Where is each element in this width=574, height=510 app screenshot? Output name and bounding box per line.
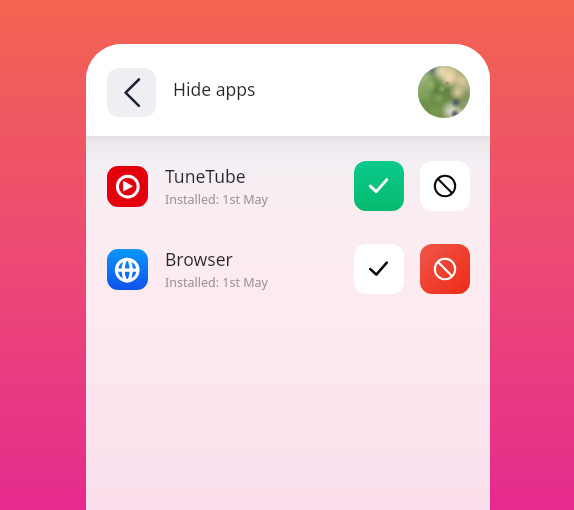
staticText: Browser bbox=[165, 247, 233, 271]
staticText: Installed: 1st May bbox=[165, 191, 268, 208]
button[interactable]: Allow bbox=[354, 161, 404, 211]
button[interactable]: Profile bbox=[418, 66, 470, 118]
staticText: Installed: 1st May bbox=[165, 274, 268, 291]
button[interactable]: Back bbox=[107, 68, 156, 117]
button[interactable]: Block bbox=[420, 161, 470, 211]
button[interactable]: Allow bbox=[354, 244, 404, 294]
staticText: TuneTube bbox=[165, 164, 246, 188]
staticText: Hide apps bbox=[173, 77, 256, 101]
button[interactable]: Block bbox=[420, 244, 470, 294]
